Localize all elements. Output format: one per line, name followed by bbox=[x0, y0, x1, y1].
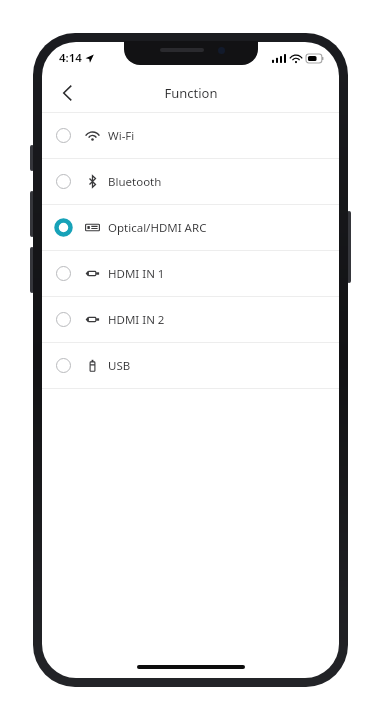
staticText: Wi-Fi bbox=[108, 128, 135, 144]
staticText: USB bbox=[108, 358, 131, 374]
staticText: Function bbox=[164, 84, 218, 102]
staticText: Optical/HDMI ARC bbox=[108, 220, 207, 236]
staticText: HDMI IN 2 bbox=[108, 312, 165, 328]
button[interactable]: Back bbox=[48, 74, 86, 112]
staticText: HDMI IN 1 bbox=[108, 266, 165, 282]
button[interactable]: USB bbox=[42, 343, 339, 388]
button[interactable]: Wi-Fi bbox=[42, 113, 339, 158]
button[interactable]: HDMI IN 1 bbox=[42, 251, 339, 296]
button[interactable]: Optical/HDMI ARC bbox=[42, 205, 339, 250]
staticText: Bluetooth bbox=[108, 174, 162, 190]
button[interactable]: Bluetooth bbox=[42, 159, 339, 204]
staticText: 4:14 bbox=[59, 50, 82, 66]
button[interactable]: HDMI IN 2 bbox=[42, 297, 339, 342]
